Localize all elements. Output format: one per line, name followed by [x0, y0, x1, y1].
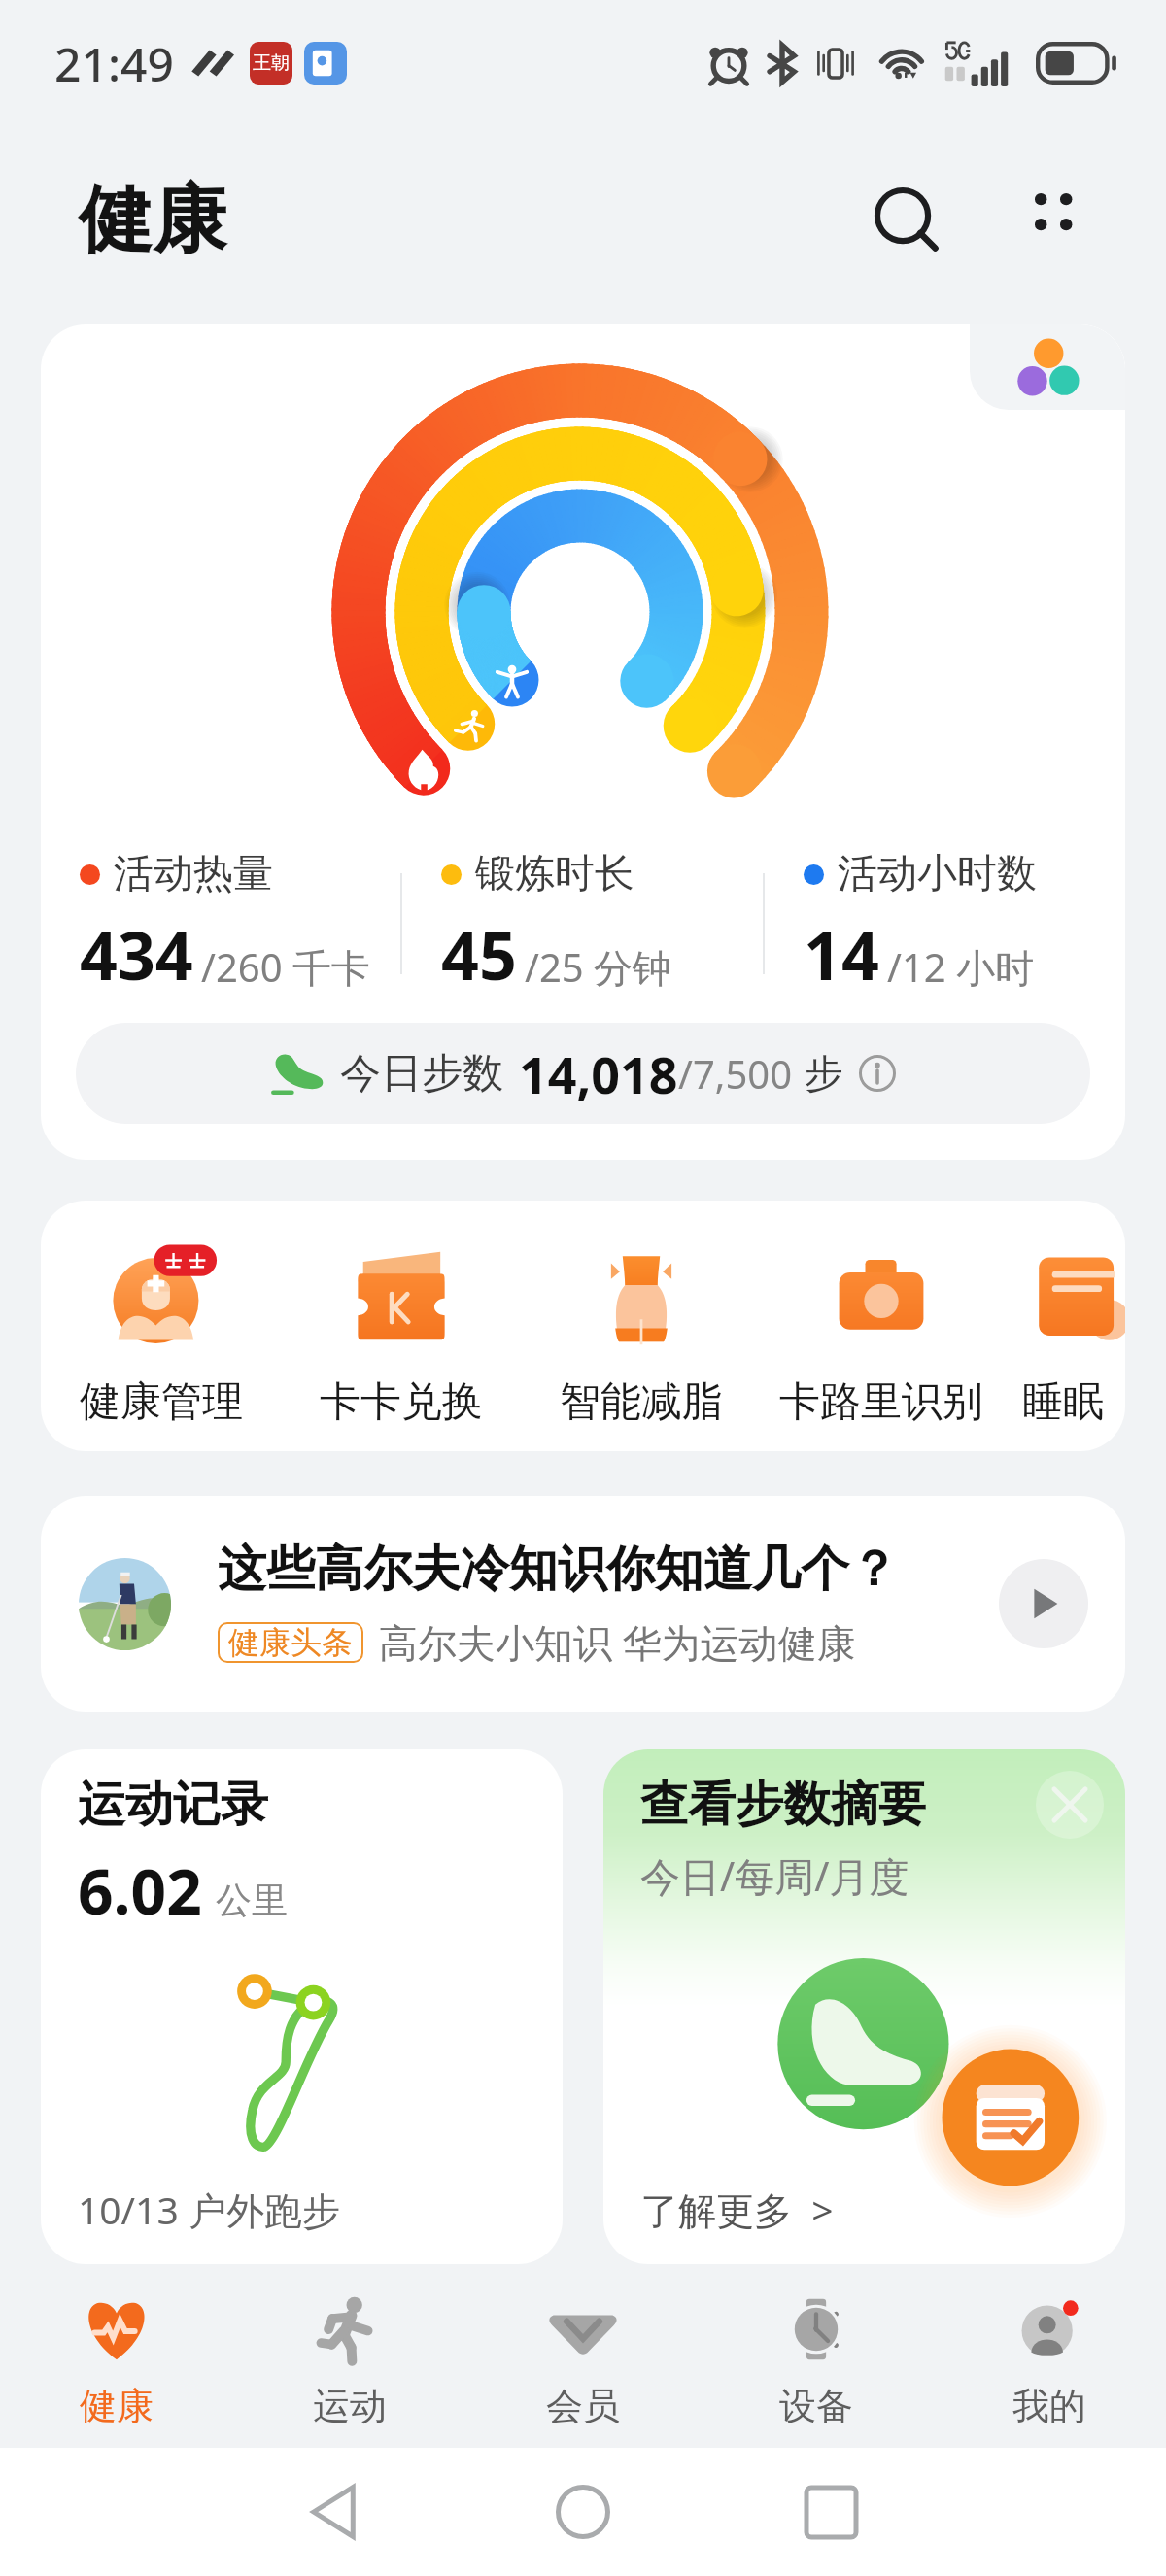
staticText: 公里	[216, 1878, 288, 1923]
staticText: 45	[441, 909, 517, 1000]
staticText: 睡眠	[1022, 1376, 1104, 1428]
button[interactable]: 这些高尔夫冷知识你知道几个？	[41, 1496, 1125, 1712]
staticText: 健康头条	[228, 1623, 353, 1662]
button[interactable]: 我的	[933, 2268, 1166, 2448]
staticText: 6.02	[78, 1848, 202, 1933]
button[interactable]: 健康	[0, 2268, 233, 2448]
staticText: 卡卡兑换	[320, 1376, 483, 1428]
staticText: /7,500	[678, 1047, 793, 1100]
staticText: 会员	[546, 2383, 620, 2429]
staticText: /260 千卡	[201, 940, 370, 994]
staticText: 步	[805, 1049, 843, 1098]
staticText: 我的	[1012, 2383, 1086, 2429]
button[interactable]: 查看步数摘要	[603, 1749, 1125, 2264]
staticText: 王朝	[253, 51, 290, 75]
button[interactable]: Close	[1036, 1771, 1104, 1839]
button[interactable]: More options	[1014, 174, 1108, 267]
staticText: 434	[80, 909, 193, 1000]
staticText: /12 小时	[887, 940, 1035, 994]
button[interactable]: 会员	[466, 2268, 700, 2448]
staticText: 健康管理	[80, 1376, 243, 1428]
button[interactable]: Back	[283, 2458, 390, 2565]
staticText: 10/13 户外跑步	[78, 2184, 340, 2235]
button[interactable]: 健康管理	[41, 1201, 281, 1451]
button[interactable]: Health circle	[970, 324, 1125, 410]
staticText: 锻炼时长	[475, 849, 634, 899]
staticText: 运动记录	[78, 1775, 268, 1835]
staticText: 14,018	[519, 1039, 678, 1108]
button[interactable]: Recents	[777, 2458, 884, 2565]
staticText: 运动	[313, 2383, 387, 2429]
staticText: /25 分钟	[525, 940, 672, 994]
staticText: 14	[804, 909, 879, 1000]
button[interactable]: 运动记录	[41, 1749, 563, 2264]
staticText: 健康	[79, 174, 226, 267]
button[interactable]: 运动	[233, 2268, 466, 2448]
button[interactable]: Health circle	[41, 324, 1125, 1160]
staticText: 高尔夫小知识 华为运动健康	[379, 1615, 856, 1669]
button[interactable]: 今日步数	[76, 1023, 1090, 1124]
staticText: 设备	[779, 2383, 853, 2429]
staticText: 活动热量	[114, 849, 273, 899]
staticText: 卡路里识别	[779, 1376, 983, 1428]
button[interactable]: 智能减脂	[521, 1201, 761, 1451]
staticText: 今日步数	[340, 1048, 503, 1100]
button[interactable]: 设备	[700, 2268, 933, 2448]
staticText: 查看步数摘要	[640, 1775, 926, 1835]
button[interactable]: 卡路里识别	[761, 1201, 1001, 1451]
staticText: 这些高尔夫冷知识你知道几个？	[218, 1539, 898, 1600]
staticText: 了解更多 >	[640, 2184, 834, 2235]
button[interactable]: 卡卡兑换	[281, 1201, 521, 1451]
button[interactable]: Play	[999, 1559, 1088, 1648]
button[interactable]: Home	[530, 2458, 636, 2565]
staticText: 健康	[80, 2383, 154, 2429]
button[interactable]: Search	[861, 174, 954, 267]
staticText: 智能减脂	[560, 1376, 723, 1428]
staticText: 今日/每周/月度	[640, 1848, 909, 1903]
staticText: 活动小时数	[838, 849, 1037, 899]
button[interactable]: 睡眠	[1001, 1201, 1125, 1451]
staticText: 21:49	[54, 32, 174, 95]
